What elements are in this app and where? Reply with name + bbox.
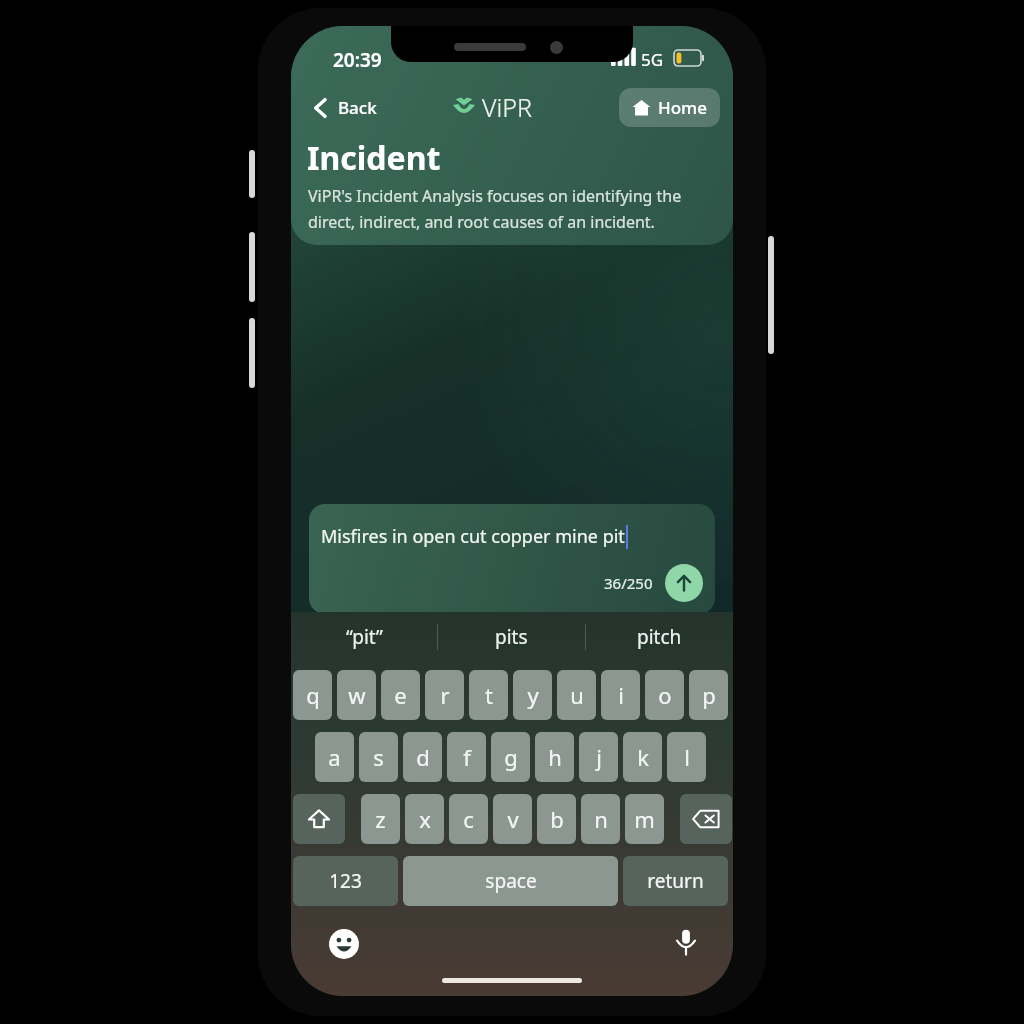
- staticText: Back: [338, 96, 377, 119]
- button[interactable]: a: [315, 732, 354, 782]
- staticText: y: [527, 680, 539, 710]
- staticText: ViPR's Incident Analysis focuses on iden…: [308, 185, 682, 233]
- button[interactable]: v: [493, 794, 532, 844]
- staticText: 36/250: [604, 573, 653, 593]
- button[interactable]: n: [581, 794, 620, 844]
- button[interactable]: return: [623, 856, 728, 906]
- button[interactable]: y: [513, 670, 552, 720]
- button[interactable]: Send: [665, 564, 703, 602]
- button[interactable]: Back: [305, 90, 385, 125]
- staticText: u: [570, 680, 584, 710]
- staticText: r: [440, 680, 450, 710]
- staticText: Home: [658, 96, 707, 119]
- button[interactable]: Shift: [293, 794, 345, 844]
- button[interactable]: pitch: [586, 612, 733, 662]
- button[interactable]: Backspace: [680, 794, 732, 844]
- button[interactable]: m: [625, 794, 664, 844]
- staticText: pits: [495, 624, 528, 650]
- staticText: Misfires in open cut copper mine pit: [321, 524, 625, 549]
- staticText: q: [306, 680, 320, 710]
- staticText: ViPR: [482, 90, 533, 124]
- button[interactable]: ViPR: [451, 90, 533, 124]
- button[interactable]: Misfires in open cut copper mine pit: [309, 504, 715, 614]
- staticText: g: [504, 742, 518, 772]
- button[interactable]: 123: [293, 856, 398, 906]
- button[interactable]: d: [403, 732, 442, 782]
- button[interactable]: Home: [619, 88, 720, 127]
- button[interactable]: i: [601, 670, 640, 720]
- button[interactable]: j: [579, 732, 618, 782]
- staticText: n: [594, 804, 608, 834]
- button[interactable]: t: [469, 670, 508, 720]
- button[interactable]: e: [381, 670, 420, 720]
- staticText: b: [550, 804, 564, 834]
- staticText: v: [507, 804, 519, 834]
- staticText: s: [373, 742, 384, 772]
- staticText: f: [463, 742, 471, 772]
- button[interactable]: f: [447, 732, 486, 782]
- staticText: h: [548, 742, 562, 772]
- button[interactable]: l: [667, 732, 706, 782]
- button[interactable]: Dictation: [669, 925, 703, 959]
- staticText: j: [596, 742, 602, 772]
- staticText: 20:39: [333, 47, 382, 73]
- button[interactable]: h: [535, 732, 574, 782]
- staticText: a: [328, 742, 341, 772]
- staticText: d: [416, 742, 430, 772]
- staticText: return: [647, 868, 704, 894]
- staticText: c: [463, 804, 474, 834]
- staticText: pitch: [637, 624, 682, 650]
- button[interactable]: Emoji: [327, 927, 361, 961]
- staticText: 5G: [641, 48, 664, 71]
- staticText: z: [375, 804, 386, 834]
- staticText: space: [485, 868, 537, 894]
- button[interactable]: “pit”: [291, 612, 437, 662]
- button[interactable]: u: [557, 670, 596, 720]
- staticText: p: [702, 680, 716, 710]
- button[interactable]: x: [405, 794, 444, 844]
- staticText: i: [618, 680, 624, 710]
- staticText: “pit”: [346, 624, 383, 650]
- button[interactable]: space: [403, 856, 618, 906]
- staticText: t: [485, 680, 493, 710]
- button[interactable]: s: [359, 732, 398, 782]
- button[interactable]: w: [337, 670, 376, 720]
- button[interactable]: q: [293, 670, 332, 720]
- staticText: 123: [329, 868, 362, 894]
- staticText: Incident: [307, 136, 441, 180]
- button[interactable]: k: [623, 732, 662, 782]
- staticText: m: [634, 804, 655, 834]
- staticText: e: [394, 680, 407, 710]
- button[interactable]: z: [361, 794, 400, 844]
- staticText: o: [658, 680, 672, 710]
- staticText: k: [637, 742, 649, 772]
- staticText: w: [348, 680, 366, 710]
- button[interactable]: g: [491, 732, 530, 782]
- button[interactable]: o: [645, 670, 684, 720]
- button[interactable]: c: [449, 794, 488, 844]
- button[interactable]: r: [425, 670, 464, 720]
- button[interactable]: pits: [438, 612, 585, 662]
- staticText: x: [419, 804, 431, 834]
- button[interactable]: b: [537, 794, 576, 844]
- staticText: l: [684, 742, 690, 772]
- button[interactable]: p: [689, 670, 728, 720]
